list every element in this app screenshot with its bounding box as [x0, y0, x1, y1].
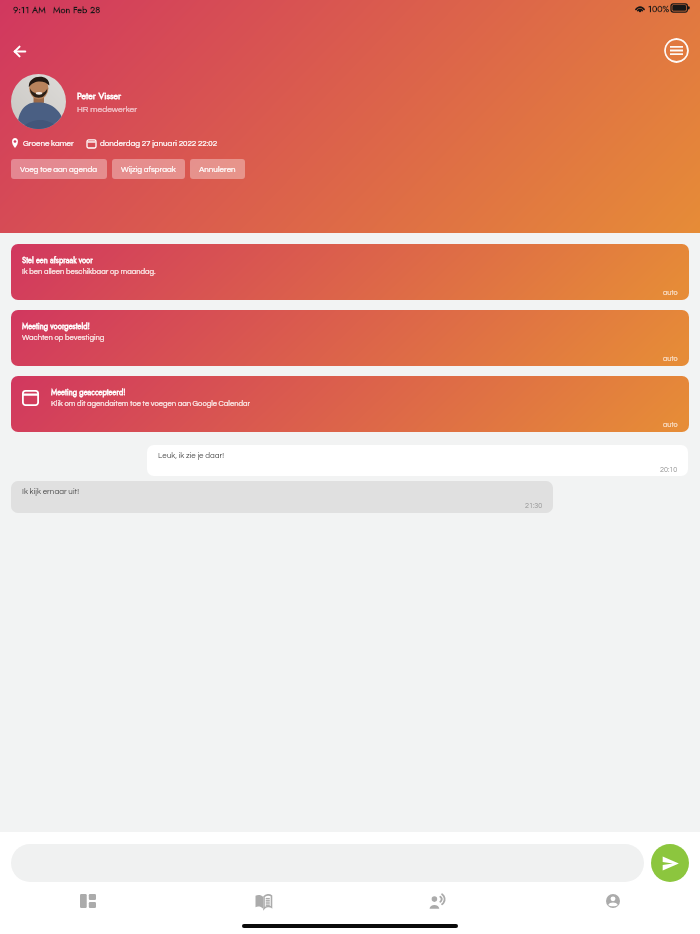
button[interactable]: Voeg toe aan agenda	[11, 159, 107, 179]
staticText: Wijzig afspraak	[121, 165, 176, 173]
staticText: auto	[663, 421, 678, 428]
staticText: Leuk, ik zie je daar!	[158, 451, 225, 459]
staticText: Stel een afspraak voor	[22, 255, 93, 266]
staticText: 9:11 AM	[13, 3, 46, 16]
button[interactable]: Menu	[664, 38, 689, 63]
button[interactable]: Ik kijk ernaar uit!	[11, 481, 553, 513]
button[interactable]: Leuk, ik zie je daar!	[147, 445, 688, 476]
button[interactable]: Voice messages	[415, 878, 461, 924]
staticText: Groene kamer	[23, 139, 74, 147]
staticText: 20:10	[660, 466, 678, 473]
staticText: Klik om dit agendaitem toe te voegen aan…	[51, 400, 251, 408]
staticText: auto	[663, 355, 678, 362]
staticText: Ik kijk ernaar uit!	[22, 487, 79, 495]
button[interactable]: Dashboard	[65, 878, 111, 924]
button[interactable]: Guide	[240, 878, 286, 924]
staticText: 100%	[648, 3, 670, 16]
button[interactable]: Wijzig afspraak	[112, 159, 185, 179]
button[interactable]: Meeting voorgesteld!	[11, 310, 689, 366]
button[interactable]: Stel een afspraak voor	[11, 244, 689, 300]
staticText: Wachten op bevestiging	[22, 334, 105, 342]
button[interactable]: Send	[651, 844, 689, 882]
button[interactable]: Profile	[590, 878, 636, 924]
staticText: HR medewerker	[77, 105, 138, 114]
staticText: Mon Feb 28	[53, 3, 101, 16]
staticText: Meeting geaccepteerd!	[51, 387, 126, 398]
staticText: Peter Visser	[77, 90, 122, 103]
staticText: Voeg toe aan agenda	[20, 165, 98, 173]
staticText: Annuleren	[199, 165, 236, 173]
staticText: auto	[663, 289, 678, 296]
button[interactable]: Meeting geaccepteerd!	[11, 376, 689, 432]
staticText: donderdag 27 januari 2022 22:02	[100, 139, 218, 147]
button[interactable]: Annuleren	[190, 159, 245, 179]
staticText: 21:30	[525, 502, 543, 509]
staticText: Meeting voorgesteld!	[22, 321, 90, 332]
staticText: Ik ben alleen beschikbaar op maandag.	[22, 268, 156, 276]
button[interactable]: Back	[8, 39, 32, 63]
